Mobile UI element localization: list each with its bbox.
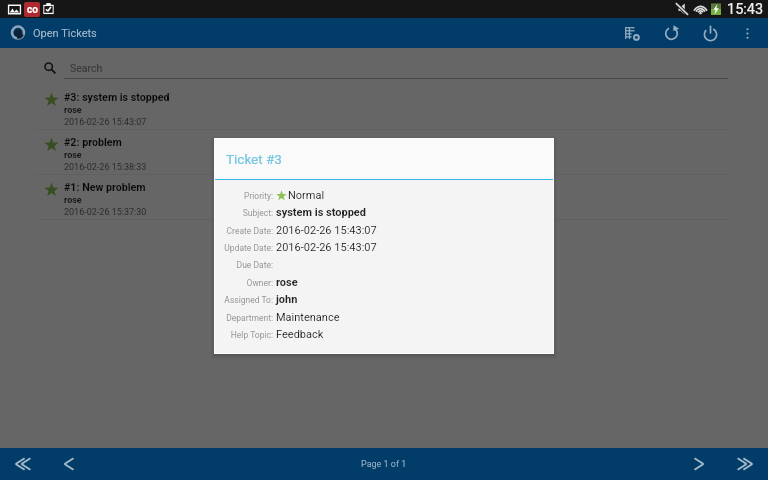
staticText: 15:43 — [727, 1, 764, 18]
staticText: 2016-02-26 15:37:30 — [64, 207, 147, 218]
button[interactable]: Open navigation — [8, 23, 28, 43]
button[interactable]: Filter tickets — [619, 20, 645, 46]
staticText: rose — [64, 195, 82, 206]
staticText: rose — [64, 150, 82, 161]
staticText: Subject: — [242, 208, 273, 218]
staticText: 2016-02-26 15:43:07 — [276, 224, 377, 237]
staticText: Open Tickets — [33, 27, 97, 40]
staticText: Feedback — [276, 328, 324, 341]
staticText: co — [27, 4, 38, 16]
staticText: Owner: — [246, 278, 273, 288]
button[interactable]: Refresh — [658, 20, 684, 46]
staticText: Search — [70, 62, 103, 74]
button[interactable]: #1: New problem — [0, 175, 768, 220]
staticText: Assigned To: — [224, 295, 273, 305]
staticText: john — [276, 293, 298, 306]
staticText: #1: New problem — [64, 181, 146, 194]
staticText: 2016-02-26 15:38:33 — [64, 162, 147, 173]
button[interactable]: #2: problem — [0, 130, 768, 175]
staticText: Update Date: — [224, 243, 273, 253]
staticText: Department: — [226, 313, 273, 323]
staticText: Normal — [288, 189, 325, 202]
staticText: Ticket #3 — [226, 151, 282, 167]
staticText: Due Date: — [236, 260, 273, 270]
button[interactable]: First page — [8, 451, 38, 477]
button[interactable]: Last page — [730, 451, 760, 477]
staticText: rose — [276, 276, 298, 289]
staticText: Priority: — [244, 191, 273, 201]
staticText: Create Date: — [226, 226, 273, 236]
button[interactable]: Previous page — [54, 451, 84, 477]
button[interactable]: Log out — [697, 20, 723, 46]
staticText: 2016-02-26 15:43:07 — [64, 117, 147, 128]
staticText: 2016-02-26 15:43:07 — [276, 241, 377, 254]
button[interactable]: More options — [734, 20, 760, 46]
staticText: Maintenance — [276, 311, 340, 324]
button[interactable]: Search — [44, 58, 728, 78]
staticText: #2: problem — [64, 136, 122, 149]
staticText: rose — [64, 105, 82, 116]
button[interactable]: #3: system is stopped — [0, 85, 768, 130]
staticText: system is stopped — [276, 206, 367, 219]
staticText: #3: system is stopped — [64, 91, 170, 104]
staticText: Help Topic: — [230, 330, 273, 340]
staticText: Page 1 of 1 — [361, 459, 407, 470]
button[interactable]: Next page — [684, 451, 714, 477]
